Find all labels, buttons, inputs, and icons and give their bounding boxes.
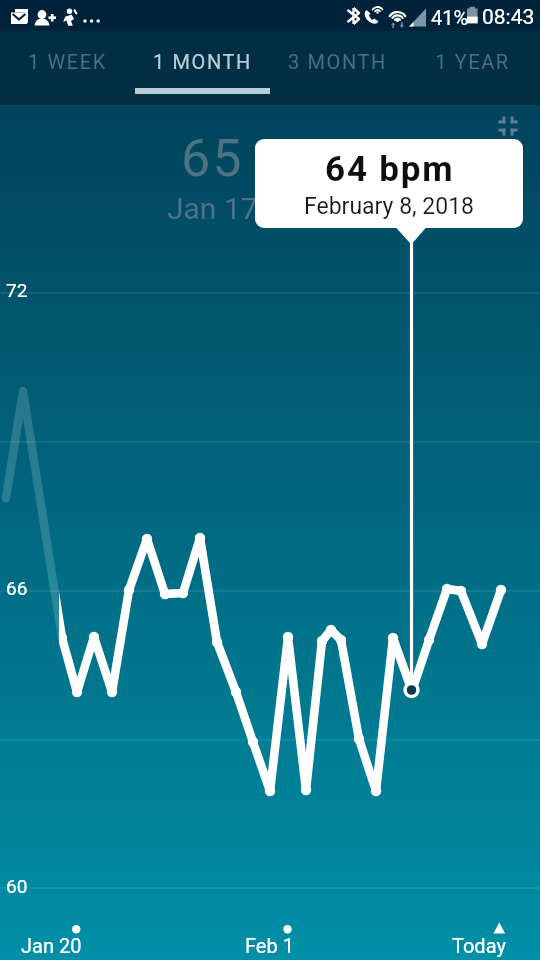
staticText: 41%	[431, 6, 469, 29]
staticText: 08:43	[482, 5, 535, 30]
staticText: 66	[6, 577, 28, 599]
staticText: 65	[181, 128, 244, 189]
button[interactable]: 3 MONTH	[270, 31, 405, 105]
staticText: Jan 17	[167, 191, 258, 226]
staticText: Feb 1	[245, 934, 294, 957]
staticText: Today	[452, 934, 506, 957]
staticText: 1 MONTH	[153, 50, 252, 73]
staticText: 1 YEAR	[435, 50, 510, 73]
staticText: 1 WEEK	[28, 50, 107, 73]
staticText: 72	[6, 279, 28, 301]
staticText: 60	[6, 875, 28, 897]
button[interactable]: 1 WEEK	[0, 31, 135, 105]
staticText: February 8, 2018	[304, 193, 475, 220]
staticText: 3 MONTH	[288, 50, 387, 73]
button[interactable]: 1 YEAR	[405, 31, 540, 105]
button[interactable]: 64 bpm	[255, 139, 523, 228]
staticText: 64 bpm	[325, 149, 455, 190]
button[interactable]: Exit full screen	[491, 109, 525, 143]
staticText: Jan 20	[21, 934, 82, 957]
button[interactable]: 1 MONTH	[135, 31, 270, 105]
